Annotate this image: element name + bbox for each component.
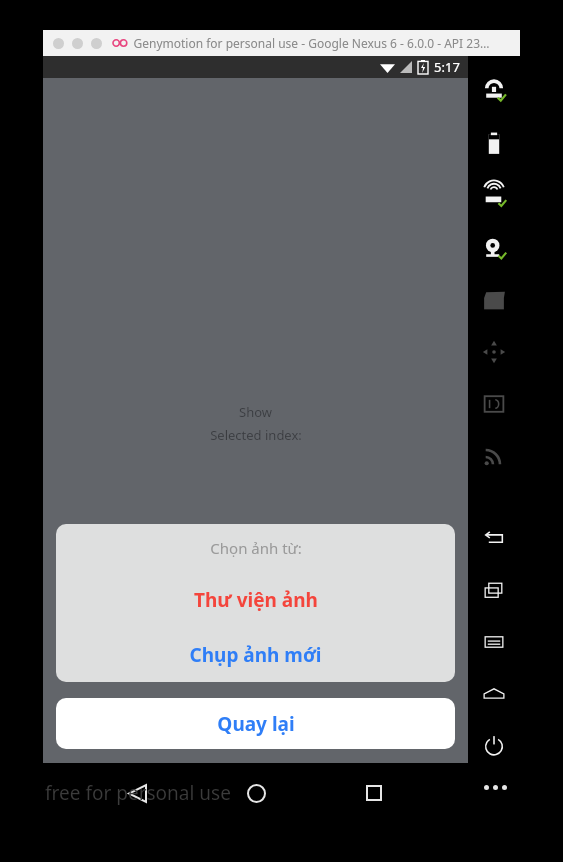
button[interactable]: Back <box>112 768 162 818</box>
staticText: Selected index: <box>210 426 302 444</box>
button[interactable]: Camera <box>468 222 520 274</box>
button[interactable]: Recents <box>468 564 520 616</box>
staticText: Chụp ảnh mới <box>189 642 322 668</box>
staticText: Show <box>239 403 272 421</box>
staticText: Thư viện ảnh <box>194 587 318 613</box>
staticText: Chọn ảnh từ: <box>210 538 302 558</box>
staticText: Genymotion for personal use - Google Nex… <box>133 35 490 51</box>
button[interactable]: Video recorder <box>468 274 520 326</box>
staticText: Quay lại <box>217 711 295 737</box>
button[interactable]: Battery <box>468 118 520 170</box>
button[interactable]: Identifiers <box>468 378 520 430</box>
button[interactable]: Home <box>468 668 520 720</box>
button[interactable]: Chụp ảnh mới <box>56 627 455 682</box>
button[interactable]: Menu <box>468 616 520 668</box>
button[interactable]: Power <box>468 720 520 772</box>
button[interactable]: Home <box>231 768 281 818</box>
staticText: free for personal use <box>45 780 231 806</box>
button[interactable]: More options <box>478 770 512 804</box>
button[interactable]: Rotate <box>468 326 520 378</box>
button[interactable]: GPS <box>468 170 520 222</box>
button[interactable]: Recent apps <box>349 768 399 818</box>
button[interactable]: Network <box>468 430 520 482</box>
button[interactable]: Back <box>468 512 520 564</box>
button[interactable]: Battery GAPPS <box>468 66 520 118</box>
staticText: 5:17 <box>434 58 460 76</box>
button[interactable]: Thư viện ảnh <box>56 572 455 627</box>
button[interactable]: Quay lại <box>56 698 455 749</box>
